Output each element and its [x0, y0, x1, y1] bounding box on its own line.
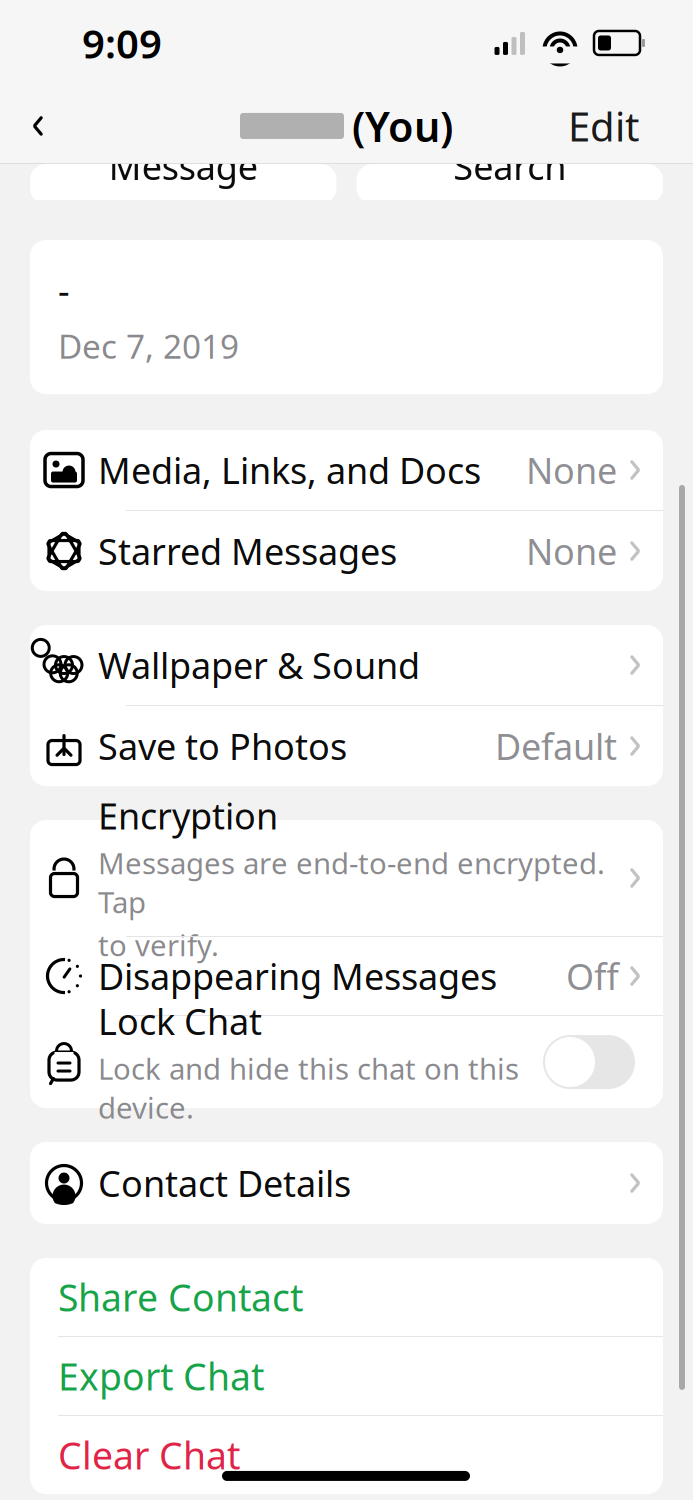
staticText: None: [526, 527, 617, 575]
staticText: Contact Details: [98, 1159, 351, 1207]
staticText: Search: [453, 142, 566, 190]
staticText: 9:09: [82, 16, 162, 69]
staticText: Off: [566, 952, 619, 1000]
staticText: Wallpaper & Sound: [98, 641, 420, 689]
button[interactable]: Lock Chat: [30, 1016, 663, 1108]
staticText: Dec 7, 2019: [58, 324, 239, 368]
staticText: Save to Photos: [98, 722, 347, 770]
staticText: None: [526, 446, 617, 494]
button[interactable]: Media, Links, and Docs: [30, 430, 663, 510]
staticText: Lock Chat: [98, 997, 262, 1045]
staticText: Messages are end-to-end encrypted. Tap: [98, 843, 605, 921]
button[interactable]: Contact Details: [30, 1142, 663, 1224]
staticText: Message: [109, 142, 258, 190]
button[interactable]: Search: [356, 164, 663, 204]
button[interactable]: Edit: [562, 98, 645, 154]
button[interactable]: Back: [10, 98, 66, 154]
staticText: Disappearing Messages: [98, 952, 497, 1000]
button[interactable]: Save to Photos: [30, 706, 663, 786]
button[interactable]: Clear Chat: [30, 1416, 663, 1494]
staticText: -: [58, 266, 70, 314]
button[interactable]: Starred Messages: [30, 511, 663, 591]
staticText: Lock and hide this chat on this device.: [98, 1049, 519, 1127]
button[interactable]: Disappearing Messages: [30, 937, 663, 1015]
button[interactable]: Encryption: [30, 820, 663, 936]
staticText: Clear Chat: [58, 1430, 240, 1480]
staticText: Encryption: [98, 792, 278, 839]
button[interactable]: Share Contact: [30, 1258, 663, 1336]
button[interactable]: Wallpaper & Sound: [30, 625, 663, 705]
button[interactable]: Message: [30, 164, 336, 204]
staticText: Media, Links, and Docs: [98, 446, 481, 494]
staticText: Starred Messages: [98, 527, 397, 575]
staticText: (You): [352, 98, 453, 153]
staticText: Edit: [568, 99, 639, 152]
staticText: Share Contact: [58, 1272, 303, 1322]
button[interactable]: Export Chat: [30, 1337, 663, 1415]
staticText: Export Chat: [58, 1351, 264, 1401]
staticText: to verify.: [98, 925, 219, 964]
staticText: Default: [495, 722, 617, 770]
